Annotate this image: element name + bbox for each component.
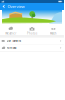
- button[interactable]: Forecast: [0, 45, 64, 51]
- staticText: Overview: [7, 4, 24, 9]
- staticText: Live camera: [7, 39, 21, 43]
- staticText: Forecast: [7, 46, 17, 50]
- button[interactable]: Watch: [43, 26, 64, 36]
- button[interactable]: Live camera: [0, 38, 64, 44]
- staticText: Watch: [50, 32, 57, 35]
- staticText: Weather: [5, 32, 16, 35]
- button[interactable]: Back: [1, 3, 7, 10]
- button[interactable]: Weather: [0, 26, 21, 36]
- staticText: Photos: [27, 32, 37, 35]
- button[interactable]: Photos: [21, 26, 43, 36]
